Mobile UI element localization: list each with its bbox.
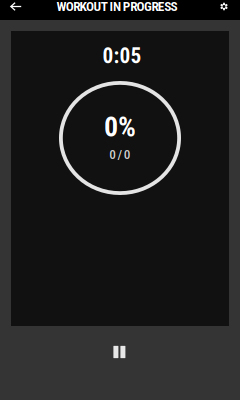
button[interactable]: Back [5,0,27,13]
staticText: 0 / 0 [109,147,131,162]
button[interactable]: Pause [0,326,239,378]
button[interactable]: Settings [214,0,234,13]
staticText: 0:05 [102,43,141,68]
staticText: 0% [104,111,136,143]
staticText: WORKOUT IN PROGRESS [56,0,178,14]
